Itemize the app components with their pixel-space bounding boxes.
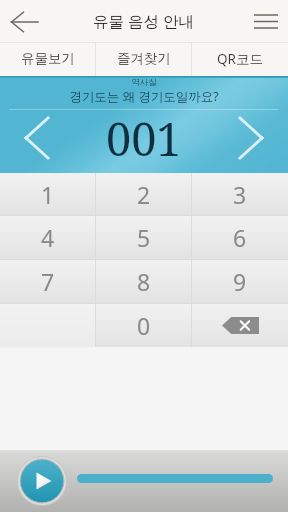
staticText: 001 [106,108,182,169]
button[interactable]: 9 [192,260,288,303]
button[interactable]: 유물보기 [0,43,96,76]
staticText: 8 [137,266,151,297]
other: Backspace [222,317,259,334]
staticText: QR코드 [217,50,263,68]
staticText: 즐겨찾기 [117,50,171,67]
staticText: 3 [233,179,247,210]
button[interactable]: 2 [96,173,192,215]
staticText: 유물 음성 안내 [93,10,195,31]
button[interactable]: 8 [96,260,192,303]
button[interactable]: 1 [0,173,96,215]
button[interactable]: Menu [244,0,288,43]
staticText: 6 [233,222,247,253]
staticText: 0 [137,310,151,341]
staticText: 유물보기 [21,50,75,67]
button[interactable]: 즐겨찾기 [96,43,192,76]
staticText: 5 [137,222,151,253]
staticText: 4 [41,222,55,253]
button[interactable]: Backspace [192,304,288,347]
staticText: 경기도는 왜 경기도일까요? [69,88,219,105]
button[interactable] [77,474,273,483]
button[interactable]: Next [227,110,275,166]
staticText: 9 [233,266,247,297]
button[interactable]: 6 [192,216,288,259]
button[interactable]: Back [0,0,48,43]
button[interactable]: Play [17,456,67,506]
button[interactable]: Previous [13,110,61,166]
staticText: 2 [137,179,151,210]
button[interactable]: 7 [0,260,96,303]
staticText: 역사실 [131,77,157,88]
button[interactable]: QR코드 [192,43,288,76]
button[interactable]: 0 [96,304,192,347]
button[interactable]: 5 [96,216,192,259]
button[interactable]: 4 [0,216,96,259]
button[interactable]: 3 [192,173,288,215]
staticText: 1 [41,179,55,210]
staticText: 7 [41,266,55,297]
